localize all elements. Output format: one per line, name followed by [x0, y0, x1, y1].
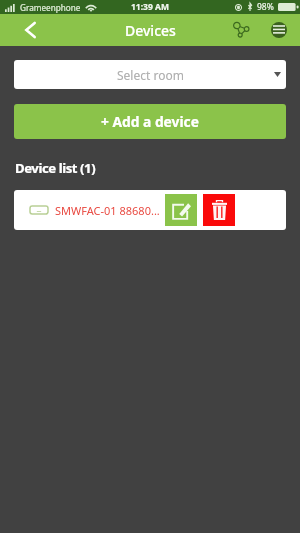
staticText: Device list (1) [15, 159, 96, 177]
button[interactable]: + Add a device [14, 104, 286, 139]
button[interactable]: Edit [165, 194, 197, 226]
staticText: Select room [117, 67, 184, 83]
button[interactable]: Network [228, 17, 254, 43]
staticText: 98% [257, 1, 274, 13]
staticText: Grameenphone [20, 2, 81, 13]
button[interactable]: Menu [266, 17, 292, 43]
button[interactable]: Select room [14, 60, 286, 89]
staticText: 11:39 AM [131, 1, 169, 13]
button[interactable]: Back [14, 14, 46, 46]
staticText: Devices [125, 21, 176, 40]
button[interactable]: Delete [203, 194, 235, 226]
staticText: SMWFAC-01 88680... [55, 203, 160, 218]
staticText: + Add a device [101, 112, 199, 131]
